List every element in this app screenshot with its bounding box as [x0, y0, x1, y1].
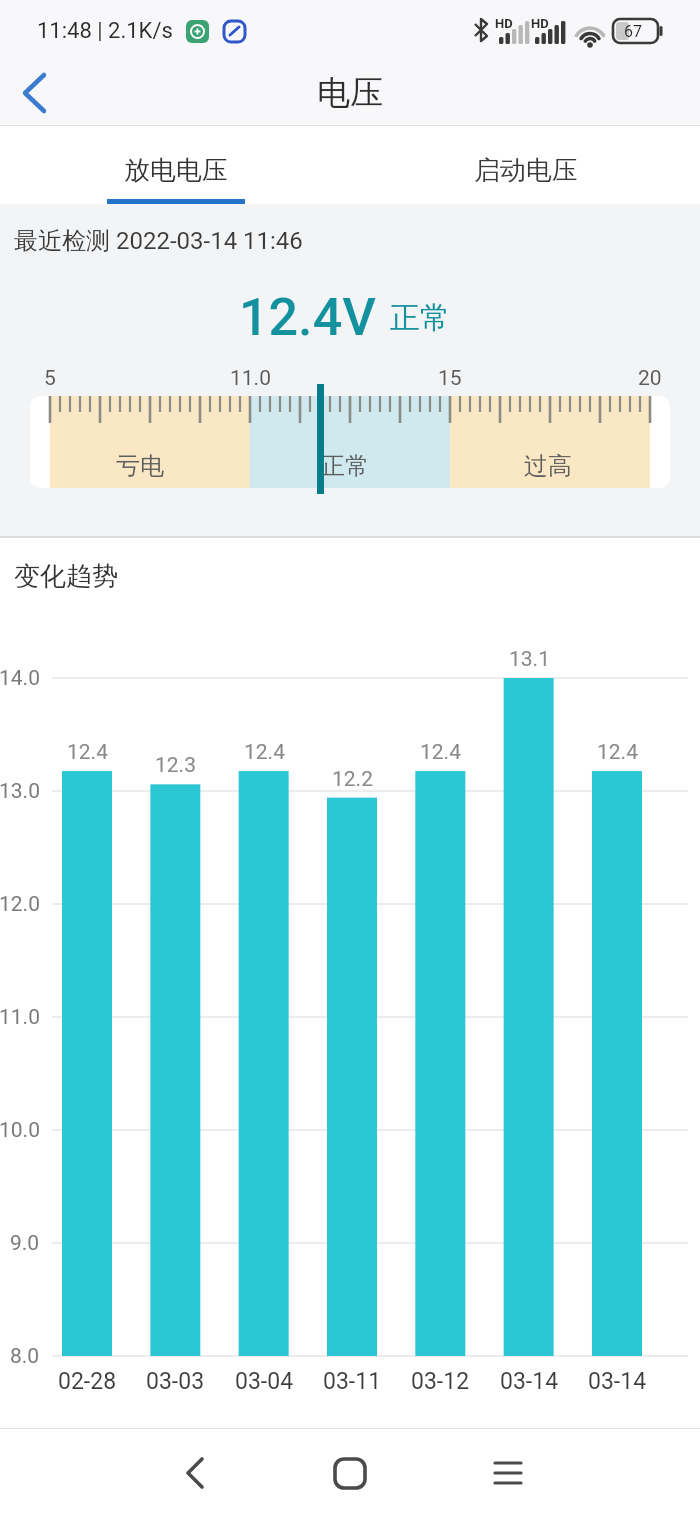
- staticText: 02-28: [58, 1368, 117, 1395]
- staticText: 15: [438, 366, 462, 391]
- staticText: 12.4: [597, 740, 638, 765]
- staticText: 启动电压: [474, 154, 578, 187]
- staticText: 03-11: [323, 1368, 382, 1395]
- staticText: 11.0: [230, 366, 271, 391]
- staticText: 13.0: [0, 779, 40, 804]
- staticText: 8.0: [10, 1344, 40, 1369]
- button[interactable]: [350, 126, 700, 204]
- staticText: HD: [531, 16, 549, 31]
- staticText: 03-14: [588, 1368, 647, 1395]
- staticText: 12.4: [67, 740, 108, 765]
- staticText: 10.0: [0, 1118, 40, 1143]
- staticText: 9.0: [10, 1231, 40, 1256]
- staticText: 放电电压: [124, 154, 228, 187]
- staticText: 12.4: [244, 740, 285, 765]
- staticText: 14.0: [0, 666, 40, 691]
- staticText: 过高: [524, 451, 572, 481]
- staticText: 12.3: [155, 753, 196, 778]
- staticText: 03-04: [235, 1368, 294, 1395]
- staticText: 03-12: [411, 1368, 470, 1395]
- staticText: 12.2: [332, 767, 373, 792]
- button[interactable]: [0, 126, 350, 204]
- button[interactable]: [473, 1442, 543, 1506]
- staticText: 13.1: [509, 647, 550, 672]
- button[interactable]: [160, 1442, 230, 1506]
- staticText: 变化趋势: [14, 560, 118, 593]
- button[interactable]: [8, 70, 60, 116]
- staticText: 最近检测 2022-03-14 11:46: [14, 226, 303, 256]
- staticText: 03-14: [500, 1368, 559, 1395]
- staticText: 正常: [390, 299, 450, 337]
- staticText: 11:48 | 2.1K/s: [37, 18, 173, 44]
- staticText: 67: [624, 22, 642, 41]
- staticText: 11.0: [0, 1005, 40, 1030]
- staticText: 12.4: [420, 740, 461, 765]
- staticText: HD: [495, 16, 513, 31]
- staticText: 电压: [317, 72, 383, 114]
- staticText: 正常: [321, 451, 369, 481]
- staticText: 亏电: [116, 451, 164, 481]
- button[interactable]: [315, 1442, 385, 1506]
- staticText: 03-03: [146, 1368, 205, 1395]
- staticText: 12.0: [0, 892, 40, 917]
- staticText: 12.4V: [239, 287, 376, 348]
- staticText: 5: [44, 366, 56, 391]
- staticText: 20: [638, 366, 662, 391]
